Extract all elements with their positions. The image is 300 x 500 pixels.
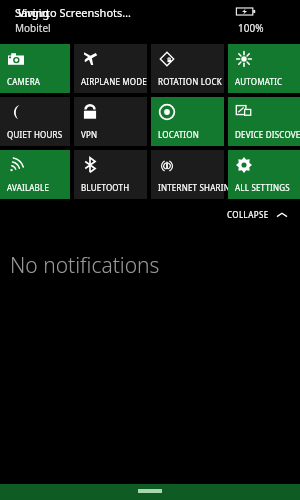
button[interactable]: AIRPLANE MODE: [74, 44, 147, 93]
staticText: AVAILABLE: [7, 182, 50, 193]
staticText: ROTATION LOCK: [158, 76, 222, 87]
staticText: Mobitel: [15, 21, 51, 35]
staticText: to Screenshots…: [46, 5, 131, 20]
other: Battery charging: [236, 6, 256, 17]
button[interactable]: DEVICE DISCOVERY: [228, 97, 300, 146]
button[interactable]: VPN: [74, 97, 147, 146]
staticText: AUTOMATIC: [235, 76, 283, 87]
button[interactable]: INTERNET SHARING: [151, 150, 224, 199]
button[interactable]: LOCATION: [151, 97, 224, 146]
staticText: QUIET HOURS: [7, 129, 63, 140]
button[interactable]: ALL SETTINGS: [228, 150, 300, 199]
staticText: INTERNET SHARING: [158, 182, 231, 193]
staticText: Saving: [15, 5, 50, 20]
staticText: DEVICE DISCOVERY: [235, 129, 300, 140]
staticText: LOCATION: [158, 129, 199, 140]
button[interactable]: QUIET HOURS: [0, 97, 70, 146]
button[interactable]: AVAILABLE: [0, 150, 70, 199]
button[interactable]: CAMERA: [0, 44, 70, 93]
staticText: BLUETOOTH: [81, 182, 130, 193]
button[interactable]: BLUETOOTH: [74, 150, 147, 199]
staticText: 100%: [238, 21, 264, 35]
staticText: COLLAPSE: [227, 209, 269, 220]
button[interactable]: ROTATION LOCK: [151, 44, 224, 93]
staticText: No notifications: [10, 251, 160, 280]
button[interactable]: AUTOMATIC: [228, 44, 300, 93]
staticText: VPN: [81, 129, 98, 140]
staticText: CAMERA: [7, 76, 41, 87]
staticText: AIRPLANE MODE: [81, 76, 147, 87]
staticText: ALL SETTINGS: [235, 182, 290, 193]
staticText: Virgin: [18, 5, 49, 20]
button[interactable]: COLLAPSE: [223, 205, 292, 224]
